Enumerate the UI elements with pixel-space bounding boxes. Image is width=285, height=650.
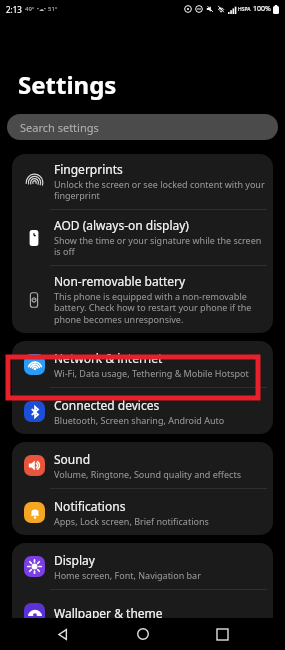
staticText: Show the time or your signature while th… (54, 234, 265, 258)
staticText: Volume, Ringtone, Sound quality and effe… (54, 468, 241, 480)
button[interactable]: Non-removable battery (12, 266, 273, 333)
staticText: Display (54, 552, 95, 568)
staticText: Fingerprints (54, 161, 123, 177)
staticText: Wi-Fi, Data usage, Tethering & Mobile Ho… (54, 367, 249, 379)
button[interactable]: AOD (always-on display) (12, 210, 273, 265)
staticText: AOD (always-on display) (54, 217, 189, 233)
staticText: 51° (48, 5, 58, 13)
staticText: •☁• (37, 6, 46, 13)
staticText: Wallpaper & theme (54, 605, 163, 621)
staticText: Sound (54, 451, 91, 467)
button[interactable]: Connected devices (12, 388, 273, 434)
button[interactable]: Network & internet (12, 341, 273, 387)
staticText: Notifications (54, 498, 126, 514)
button[interactable]: Recents (205, 618, 239, 650)
staticText: HSPA (238, 6, 251, 13)
button[interactable]: Notifications (12, 489, 273, 535)
staticText: Home screen, Font, Navigation bar (54, 569, 201, 581)
staticText: This phone is equipped with a non-remova… (54, 290, 265, 326)
button[interactable]: Display (12, 543, 273, 589)
staticText: Apps, Lock screen, Brief notifications (54, 515, 209, 527)
button[interactable]: Sound (12, 442, 273, 488)
staticText: Non-removable battery (54, 273, 186, 289)
button[interactable]: Fingerprints (12, 154, 273, 209)
staticText: 2:13 (6, 4, 22, 15)
staticText: 49° (25, 5, 35, 13)
staticText: Connected devices (54, 397, 160, 413)
staticText: Network & internet (54, 350, 163, 366)
staticText: Unlock the screen or see locked content … (54, 178, 265, 202)
staticText: Settings (18, 68, 117, 101)
button[interactable]: Back (46, 618, 80, 650)
button[interactable]: Home (126, 618, 160, 650)
button[interactable]: Wallpaper & theme (12, 590, 273, 636)
staticText: 100% (253, 4, 271, 14)
staticText: Search settings (20, 120, 99, 135)
staticText: Bluetooth, Screen sharing, Android Auto (54, 414, 225, 426)
button[interactable]: Search settings (7, 114, 278, 140)
